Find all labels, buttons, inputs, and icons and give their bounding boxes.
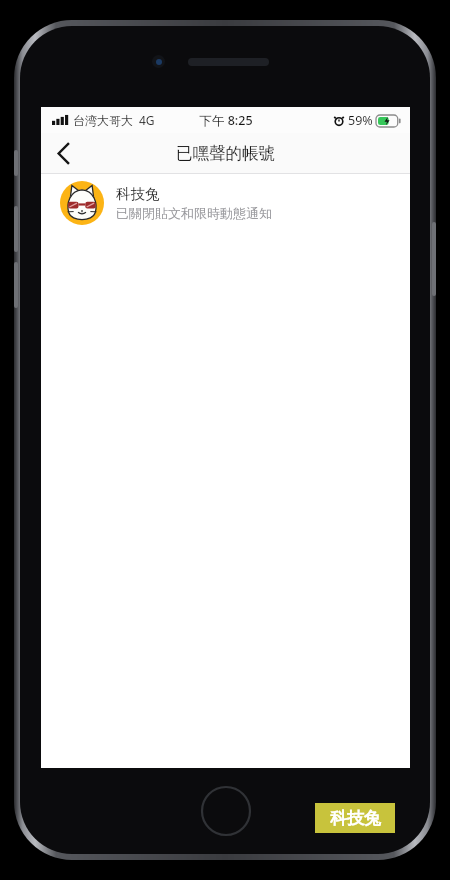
staticText: 已關閉貼文和限時動態通知 (116, 205, 272, 221)
staticText: 59% (348, 112, 373, 129)
button[interactable]: Back (41, 133, 85, 174)
staticText: 下午 8:25 (199, 112, 253, 129)
staticText: 科技兔 (116, 185, 160, 203)
button[interactable]: 科技兔 (315, 803, 395, 833)
staticText: 4G (139, 112, 155, 128)
button[interactable]: 科技兔 (41, 174, 410, 232)
staticText: 科技兔 (330, 808, 381, 829)
staticText: 台湾大哥大 (73, 113, 133, 128)
staticText: 已嘿聲的帳號 (176, 143, 275, 164)
